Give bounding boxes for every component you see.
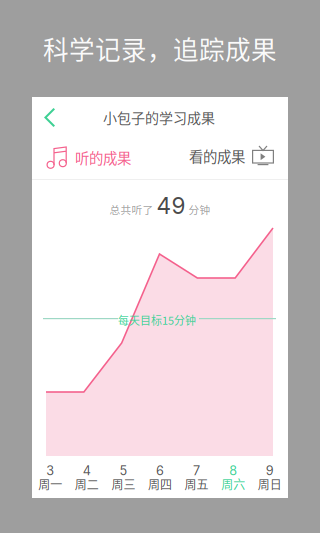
staticText: 周日 (258, 475, 282, 493)
staticText: 周五 (185, 475, 209, 493)
staticText: 科学记录，追踪成果 (43, 30, 277, 67)
button[interactable]: 看的成果 (185, 141, 278, 171)
button[interactable]: 听的成果 (43, 142, 135, 173)
staticText: 3 (46, 463, 54, 478)
staticText: 周一 (38, 475, 62, 493)
staticText: 听的成果 (75, 147, 131, 168)
staticText: 7 (193, 463, 200, 478)
staticText: 看的成果 (189, 146, 245, 166)
staticText: 5 (119, 463, 127, 478)
staticText: 总共听了 (109, 202, 153, 217)
staticText: 周三 (111, 475, 135, 493)
staticText: 小包子的学习成果 (103, 107, 215, 127)
staticText: 周四 (148, 475, 172, 493)
staticText: 4 (83, 463, 91, 478)
staticText: 9 (266, 463, 274, 478)
staticText: 8 (229, 463, 237, 478)
button[interactable]: Back (33, 101, 67, 135)
staticText: 每天目标15分钟 (118, 312, 196, 328)
staticText: 周六 (221, 475, 245, 493)
staticText: 周二 (75, 475, 99, 493)
staticText: 分钟 (188, 202, 210, 217)
staticText: 6 (156, 463, 164, 478)
staticText: 49 (156, 192, 185, 219)
